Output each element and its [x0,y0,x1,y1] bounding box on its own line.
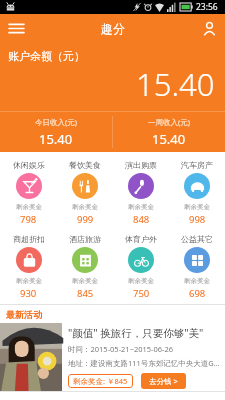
button[interactable]: 酒店旅游 [57,230,113,304]
staticText: 剩余奖金: ￥845 [73,376,128,386]
staticText: 休闲娱乐 [13,160,45,170]
staticText: 698 [189,287,206,300]
staticText: 剩余奖金 [72,203,98,211]
staticText: 750 [133,287,150,300]
staticText: 23:56 [196,1,218,13]
button[interactable]: 体育户外 [113,230,169,304]
staticText: "颜值" 换旅行，只要你够"美" [68,326,204,340]
staticText: 999 [77,213,94,226]
staticText: 剩余奖金 [128,277,154,285]
button[interactable]: 去分钱 > [149,376,178,386]
staticText: 剩余奖金 [72,277,98,285]
staticText: 趣分 [101,21,125,36]
staticText: 去分钱 > [149,376,178,386]
button[interactable]: 餐饮美食 [57,156,113,230]
staticText: 剩余奖金 [184,277,210,285]
staticText: 餐饮美食 [69,160,101,170]
staticText: 剩余奖金 [184,203,210,211]
staticText: 剩余奖金 [16,203,42,211]
staticText: 时间：2015-05-21~2015-06-26 [68,344,174,354]
staticText: 剩余奖金 [16,277,42,285]
button[interactable]: 一周收入(元) [113,112,225,152]
staticText: 今日收入(元) [35,117,77,127]
staticText: 15.40 [152,130,186,148]
button[interactable]: 演出购票 [113,156,169,230]
staticText: 930 [20,287,37,300]
staticText: 15.40 [39,130,73,148]
button[interactable]: Profile [197,16,221,40]
button[interactable]: "颜值" 换旅行，只要你够"美" [0,323,225,391]
staticText: 848 [133,213,150,226]
staticText: 剩余奖金 [128,203,154,211]
staticText: 酒店旅游 [69,234,101,244]
button[interactable]: 休闲娱乐 [0,156,57,230]
staticText: 体育户外 [125,234,157,244]
button[interactable]: Menu [4,16,28,40]
staticText: 账户余额（元） [8,49,85,63]
staticText: 演出购票 [125,160,157,170]
staticText: 845 [77,287,94,300]
button[interactable]: 今日收入(元) [0,112,112,152]
staticText: 汽车房产 [181,160,213,170]
staticText: 798 [20,213,37,226]
button[interactable]: 剩余奖金: ￥845 [73,376,128,386]
staticText: 998 [189,213,206,226]
button[interactable]: 商超折扣 [0,230,57,304]
staticText: 地址：建设南支路111号东郊记忆中央大道GUY... [68,358,221,368]
staticText: 一周收入(元) [148,117,190,127]
button[interactable]: 汽车房产 [169,156,225,230]
staticText: 商超折扣 [13,234,45,244]
button[interactable]: 公益其它 [169,230,225,304]
staticText: 15.40 [136,63,215,105]
staticText: 最新活动 [6,309,42,320]
staticText: 公益其它 [181,234,213,244]
